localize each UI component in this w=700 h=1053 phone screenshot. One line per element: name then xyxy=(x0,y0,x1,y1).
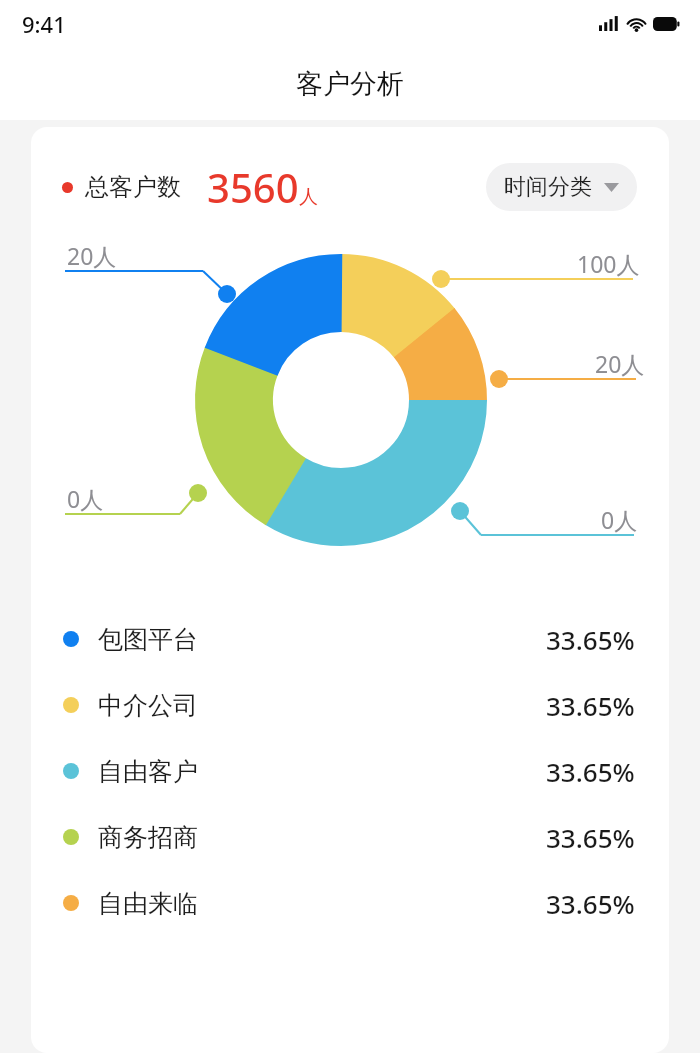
staticText: 33.65% xyxy=(546,754,635,789)
staticText: 自由客户 xyxy=(98,756,198,787)
staticText: 33.65% xyxy=(546,622,635,657)
button[interactable]: 自由来临 xyxy=(31,870,669,936)
staticText: 商务招商 xyxy=(98,822,198,853)
staticText: 9:41 xyxy=(22,9,66,39)
button[interactable]: 中介公司 xyxy=(31,672,669,738)
button[interactable]: 包图平台 xyxy=(31,606,669,672)
button[interactable]: 自由客户 xyxy=(31,738,669,804)
staticText: 100人 xyxy=(577,248,640,279)
button[interactable]: 商务招商 xyxy=(31,804,669,870)
staticText: 客户分析 xyxy=(296,67,404,101)
staticText: 20人 xyxy=(67,240,117,271)
staticText: 人 xyxy=(299,185,318,209)
staticText: 0人 xyxy=(601,504,638,535)
staticText: 33.65% xyxy=(546,886,635,921)
staticText: 总客户数 xyxy=(85,172,181,202)
staticText: 33.65% xyxy=(546,820,635,855)
staticText: 时间分类 xyxy=(504,173,592,201)
staticText: 0人 xyxy=(67,483,104,514)
staticText: 中介公司 xyxy=(98,690,198,721)
staticText: 自由来临 xyxy=(98,888,198,919)
staticText: 包图平台 xyxy=(98,624,198,655)
staticText: 20人 xyxy=(595,348,645,379)
button[interactable]: 时间分类 xyxy=(486,163,637,211)
staticText: 33.65% xyxy=(546,688,635,723)
staticText: 3560 xyxy=(207,160,299,214)
